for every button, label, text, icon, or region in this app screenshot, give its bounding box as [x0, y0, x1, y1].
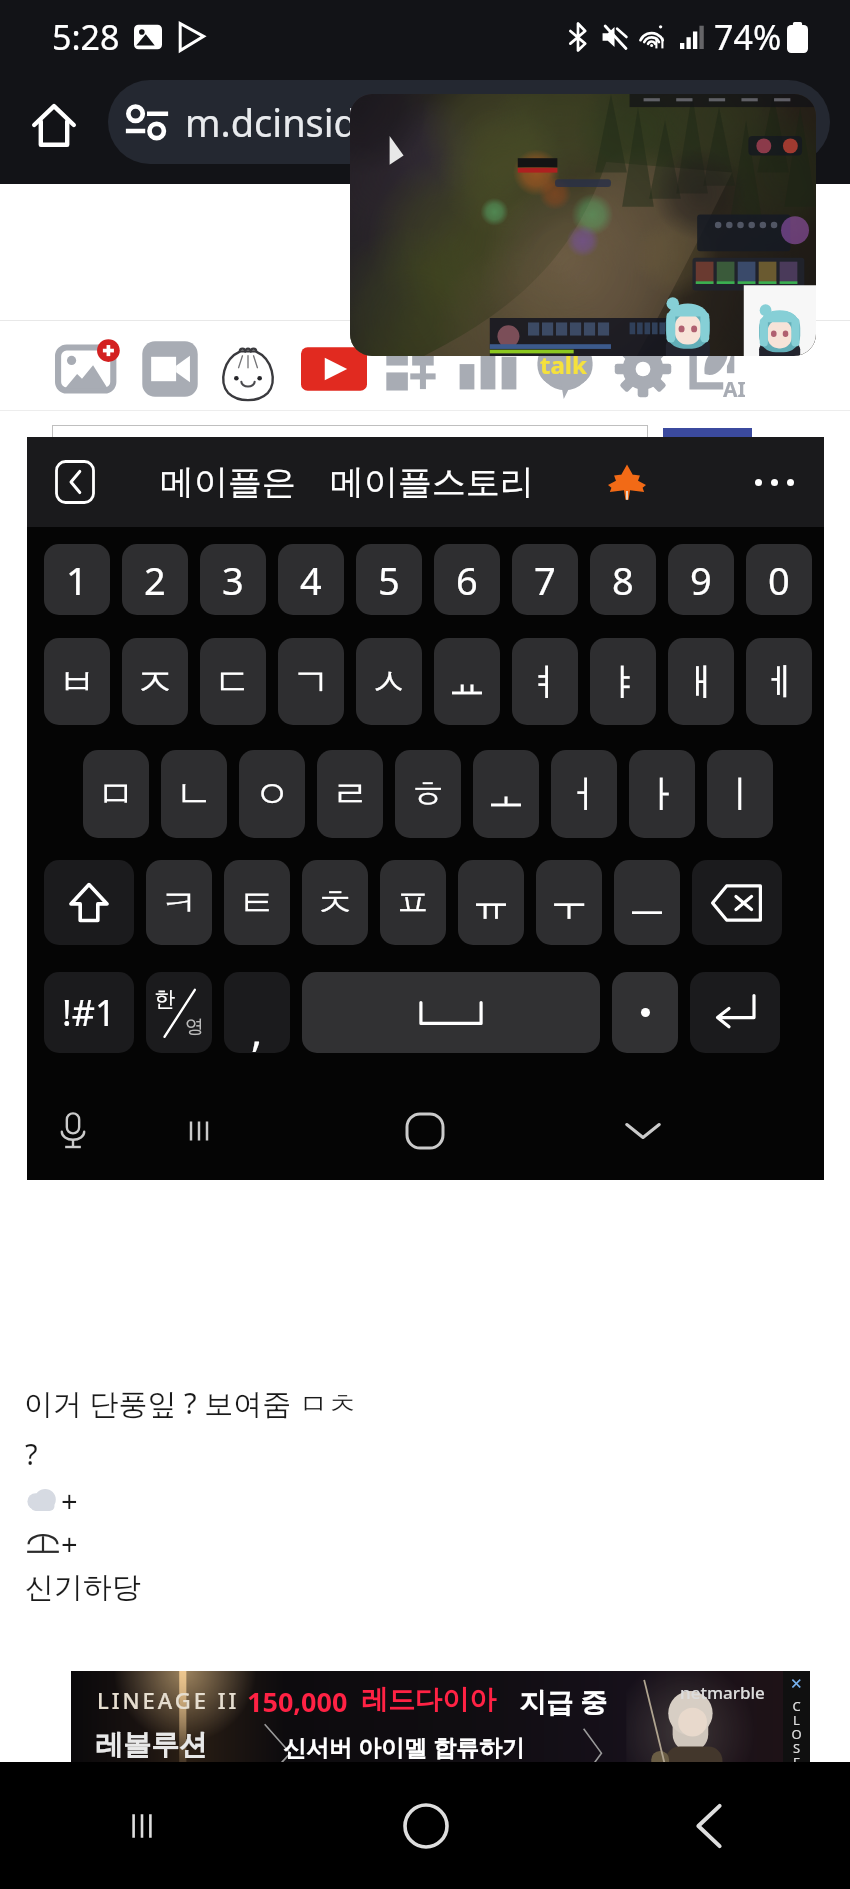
button[interactable]: Settings — [610, 336, 676, 402]
staticText: ㅛ — [448, 658, 486, 706]
staticText: 메이플은 — [160, 461, 296, 504]
staticText: 신서버 아이멜 합류하기 — [283, 1731, 525, 1762]
button[interactable]: ㅗ — [473, 750, 539, 838]
button[interactable]: ㅠ — [458, 860, 524, 945]
staticText: 이거 단풍잎 ? 보여줌 ㅁㅊ — [24, 1383, 357, 1423]
staticText: AI — [723, 375, 746, 404]
button[interactable]: ㅛ — [434, 638, 500, 725]
staticText: ㅈ — [136, 658, 174, 706]
staticText: ㅎ — [409, 770, 447, 818]
button[interactable]: ㅂ — [44, 638, 110, 725]
staticText: ㅅ — [370, 658, 408, 706]
button[interactable]: 6 — [434, 544, 500, 615]
button[interactable]: ㅁ — [83, 750, 149, 838]
button[interactable]: !#1 — [44, 972, 134, 1053]
button[interactable]: ㅕ — [512, 638, 578, 725]
staticText: ㅗ — [487, 770, 525, 818]
button[interactable]: Video — [137, 336, 203, 402]
button[interactable]: Close ad — [783, 1671, 810, 1782]
button[interactable]: 9 — [668, 544, 734, 615]
staticText: !#1 — [62, 988, 116, 1037]
staticText: ㅕ — [526, 658, 564, 706]
button[interactable]: ㅈ — [122, 638, 188, 725]
staticText: 5:28 — [52, 14, 120, 60]
button[interactable]: ㅓ — [551, 750, 617, 838]
button[interactable]: YouTube — [301, 336, 367, 402]
staticText: ㅁ — [97, 770, 135, 818]
staticText: 8 — [612, 554, 634, 606]
button[interactable]: ㄱ — [278, 638, 344, 725]
staticText: ㅡ — [628, 879, 666, 927]
button[interactable]: Recents — [0, 1762, 284, 1889]
button[interactable]: Enter — [690, 972, 780, 1053]
button[interactable]: Recents — [171, 1103, 227, 1159]
button[interactable]: Back — [567, 1762, 850, 1889]
button[interactable]: Shift — [44, 860, 134, 945]
staticText: , — [251, 1002, 263, 1053]
button[interactable]: Voice input — [45, 1103, 101, 1159]
staticText: 4 — [300, 554, 322, 606]
button[interactable]: Hide keyboard — [615, 1103, 671, 1159]
button[interactable]: ㅔ — [746, 638, 812, 725]
button[interactable]: Language — [146, 972, 212, 1053]
staticText: ㅠ — [472, 879, 510, 927]
staticText: netmarble — [680, 1681, 765, 1704]
staticText: ㅓ — [565, 770, 603, 818]
button[interactable]: 7 — [512, 544, 578, 615]
button[interactable]: Home — [32, 103, 76, 147]
button[interactable]: ㅜ — [536, 860, 602, 945]
button[interactable]: Poll — [455, 336, 521, 402]
button[interactable]: Backspace — [692, 860, 782, 945]
button[interactable]: ㅇ — [239, 750, 305, 838]
button[interactable]: ㅊ — [302, 860, 368, 945]
button[interactable]: ㅣ — [707, 750, 773, 838]
button[interactable]: ㅑ — [590, 638, 656, 725]
button[interactable]: Space — [302, 972, 600, 1053]
staticText: 0 — [768, 554, 790, 606]
button[interactable]: ㄴ — [161, 750, 227, 838]
button[interactable]: AI draw — [686, 336, 752, 402]
staticText: 9 — [690, 554, 712, 606]
button[interactable]: Sticker — [215, 336, 281, 402]
button[interactable]: 5 — [356, 544, 422, 615]
button[interactable]: Back — [55, 460, 95, 504]
button[interactable]: ㅅ — [356, 638, 422, 725]
staticText: 1 — [66, 554, 88, 606]
button[interactable]: Talk — [532, 336, 598, 402]
button[interactable]: , — [224, 972, 290, 1053]
button[interactable]: Picture in picture video — [350, 94, 816, 356]
staticText: ㅏ — [643, 770, 681, 818]
button[interactable]: 3 — [200, 544, 266, 615]
button[interactable]: m.dcinside — [108, 80, 830, 164]
button[interactable]: 4 — [278, 544, 344, 615]
button[interactable]: ㅏ — [629, 750, 695, 838]
button[interactable]: Home — [284, 1762, 567, 1889]
button[interactable]: ㅎ — [395, 750, 461, 838]
button[interactable]: Add table — [385, 336, 451, 402]
button[interactable]: 8 — [590, 544, 656, 615]
staticText: C L O S E — [791, 1697, 802, 1771]
button[interactable]: LINEAGE II — [71, 1671, 783, 1782]
staticText: 150,000 — [247, 1683, 348, 1720]
button[interactable]: 0 — [746, 544, 812, 615]
button[interactable]: 1 — [44, 544, 110, 615]
staticText: ㄹ — [331, 770, 369, 818]
button[interactable]: ㅌ — [224, 860, 290, 945]
staticText: 지급 중 — [519, 1683, 608, 1720]
button[interactable]: ㄹ — [317, 750, 383, 838]
button[interactable]: Add image — [55, 336, 121, 402]
staticText: ㅍ — [394, 879, 432, 927]
button[interactable] — [612, 972, 678, 1053]
staticText: 한 — [154, 986, 175, 1012]
staticText: + — [61, 1481, 78, 1520]
button[interactable]: 2 — [122, 544, 188, 615]
staticText: 6 — [456, 554, 478, 606]
staticText: ㅜ — [550, 879, 588, 927]
button[interactable]: ㅡ — [614, 860, 680, 945]
button[interactable] — [663, 428, 752, 438]
button[interactable]: ㄷ — [200, 638, 266, 725]
button[interactable]: Home — [397, 1103, 453, 1159]
button[interactable]: ㅍ — [380, 860, 446, 945]
button[interactable]: ㅋ — [146, 860, 212, 945]
button[interactable]: ㅐ — [668, 638, 734, 725]
